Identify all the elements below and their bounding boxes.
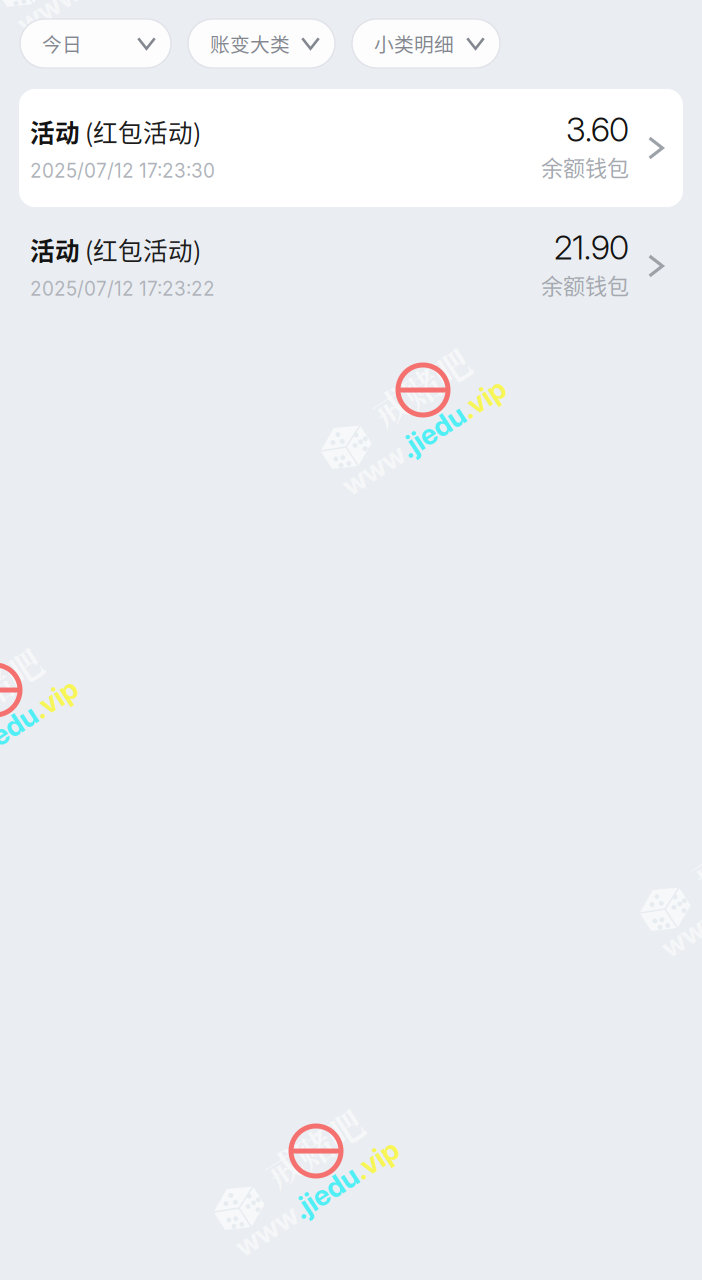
staticText: 活动 [30, 114, 80, 149]
staticText: 今日 [42, 29, 82, 58]
staticText: jiedu [0, 720, 42, 754]
staticText: 活动 [30, 232, 80, 267]
staticText: 21.90 [554, 227, 629, 268]
staticText: www [329, 420, 398, 454]
staticText: 余额钱包 [541, 269, 629, 301]
staticText: jiedu [299, 1181, 363, 1215]
staticText: 戒赌吧 [260, 1122, 368, 1174]
staticText: 2025/07/12 17:23:30 [30, 159, 215, 182]
staticText: (红包活动) [80, 114, 201, 149]
button[interactable]: 小类明细 [352, 19, 500, 68]
staticText: 2025/07/12 17:23:22 [30, 277, 215, 300]
staticText: 戒赌吧 [367, 361, 475, 413]
staticText: 余额钱包 [541, 151, 629, 183]
staticText: (红包活动) [80, 232, 201, 267]
staticText: 账变大类 [210, 29, 290, 58]
staticText: 戒赌吧 [0, 661, 47, 713]
button[interactable]: 活动 [19, 207, 683, 325]
staticText: . [398, 420, 406, 454]
staticText: 3.60 [566, 109, 629, 150]
button[interactable]: 今日 [20, 19, 171, 68]
staticText: . [291, 1181, 299, 1215]
button[interactable]: 活动 [19, 89, 683, 207]
button[interactable]: 账变大类 [188, 19, 335, 68]
staticText: www [222, 1181, 291, 1215]
staticText: www [648, 882, 702, 916]
staticText: jiedu [406, 420, 470, 454]
staticText: 小类明细 [374, 29, 454, 58]
